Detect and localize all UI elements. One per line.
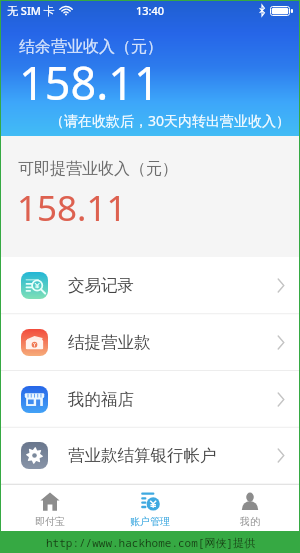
button[interactable]: 我的福店 xyxy=(0,371,300,428)
staticText: 即付宝 xyxy=(35,515,65,528)
staticText: http://www.hackhome.com[网侠]提供 xyxy=(46,535,255,550)
button[interactable]: 结提营业款 xyxy=(0,314,300,371)
staticText: 无 SIM 卡 xyxy=(7,3,55,18)
staticText: 账户管理 xyxy=(130,515,170,528)
button[interactable]: 账户管理 xyxy=(100,485,200,531)
staticText: 我的 xyxy=(240,515,260,528)
staticText: 158.11 xyxy=(19,52,160,113)
staticText: （请在收款后，30天内转出营业收入） xyxy=(50,111,291,130)
staticText: 我的福店 xyxy=(68,389,134,410)
button[interactable]: 营业款结算银行帐户 xyxy=(0,427,300,484)
staticText: 可即提营业收入（元） xyxy=(18,159,178,179)
button[interactable]: 我的 xyxy=(200,485,300,531)
staticText: 营业款结算银行帐户 xyxy=(68,445,217,466)
staticText: 158.11 xyxy=(17,184,127,232)
staticText: 结余营业收入（元） xyxy=(19,37,163,57)
button[interactable]: 即付宝 xyxy=(0,485,100,531)
staticText: 13:40 xyxy=(136,3,165,18)
staticText: 交易记录 xyxy=(68,275,134,296)
staticText: 结提营业款 xyxy=(68,332,151,353)
button[interactable]: 交易记录 xyxy=(0,257,300,314)
